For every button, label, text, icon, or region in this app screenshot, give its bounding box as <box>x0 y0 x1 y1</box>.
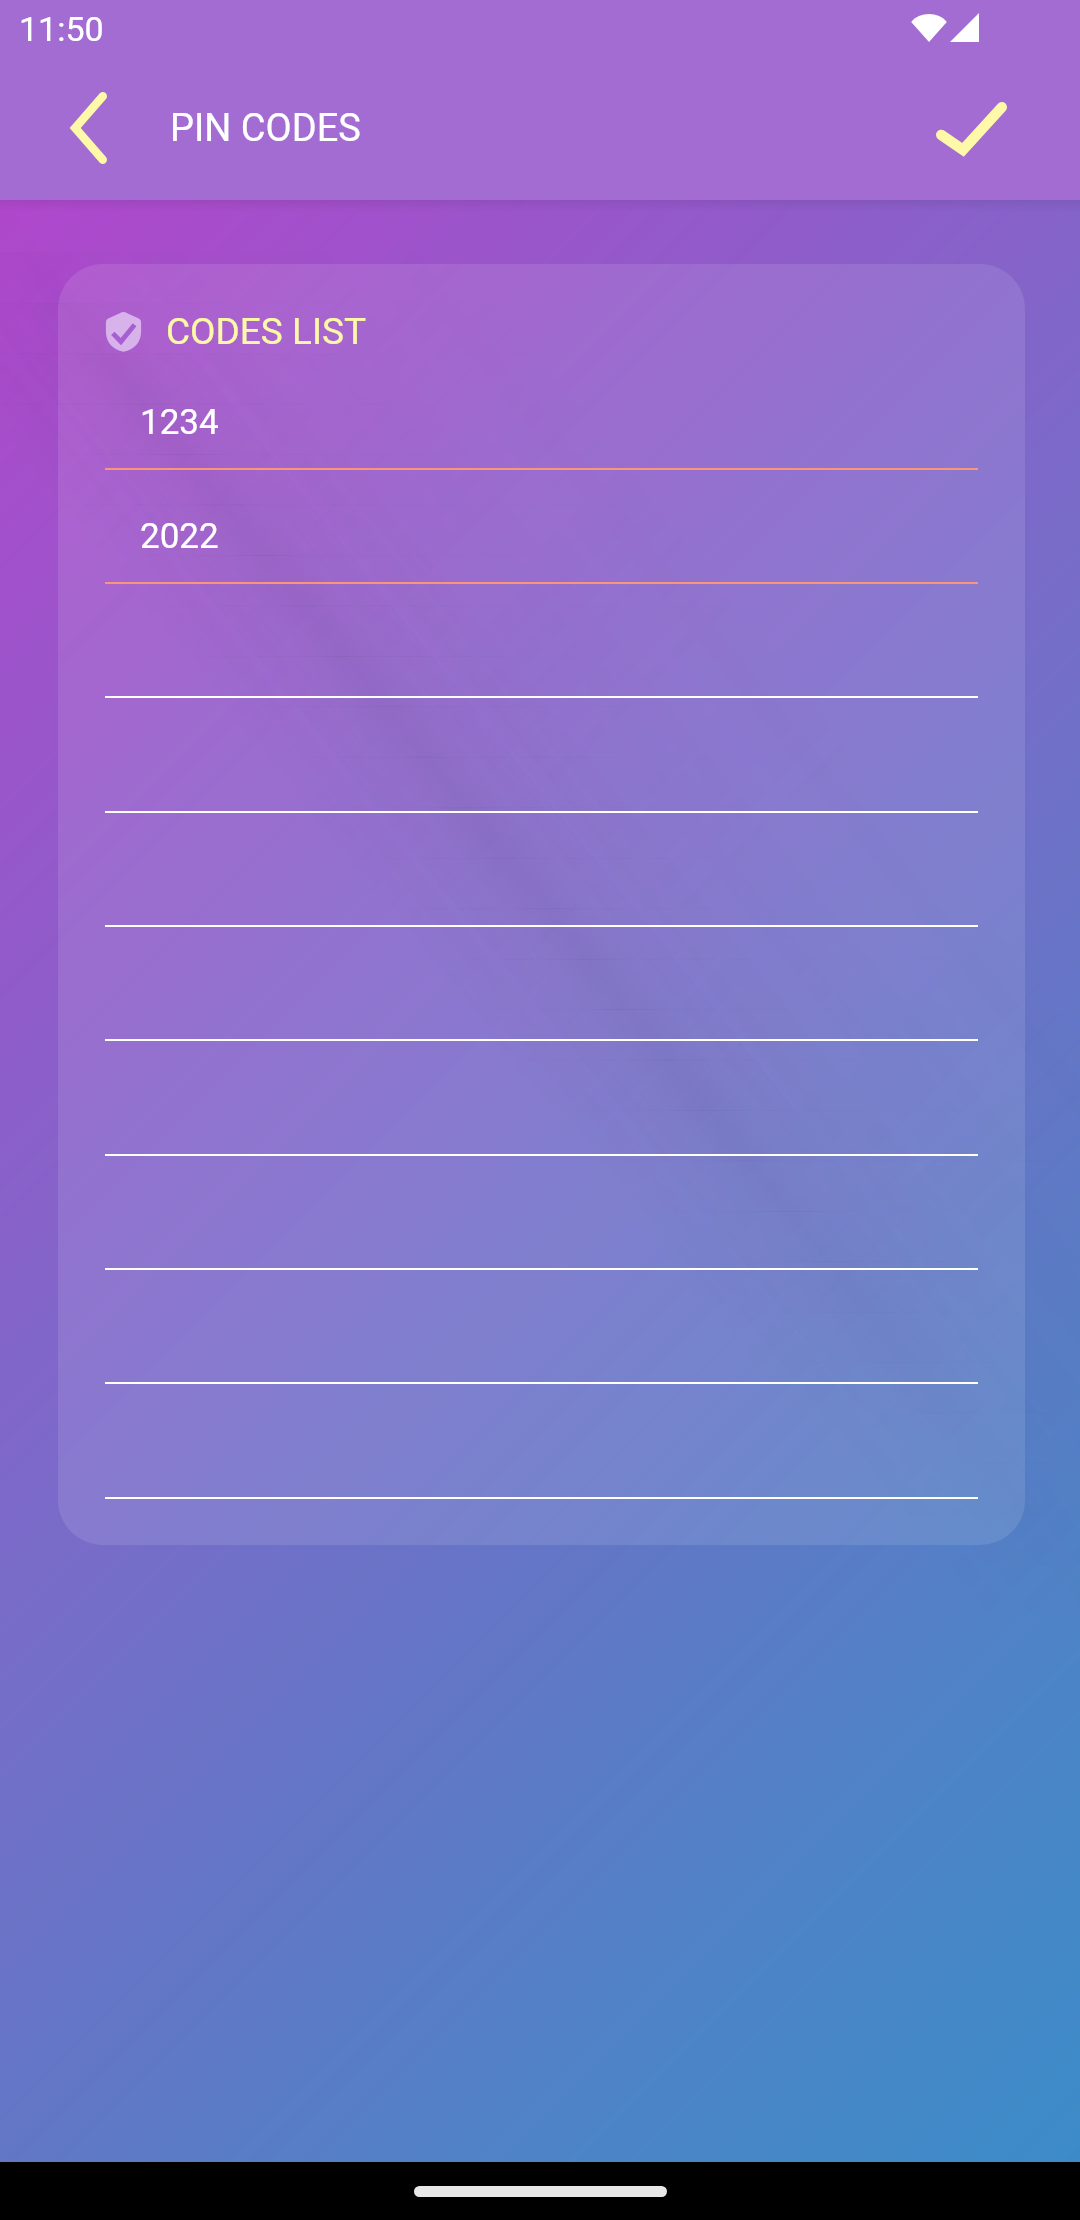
button[interactable]: 2022 <box>105 487 978 585</box>
staticText: 11:50 <box>19 9 104 49</box>
button[interactable] <box>105 1402 978 1500</box>
button[interactable] <box>105 716 978 814</box>
button[interactable]: Back <box>39 78 139 178</box>
button[interactable]: 1234 <box>105 373 978 471</box>
staticText: PIN CODES <box>170 106 361 151</box>
button[interactable] <box>105 944 978 1042</box>
staticText: 2022 <box>140 516 219 557</box>
button[interactable] <box>105 830 978 928</box>
button[interactable]: Confirm <box>921 78 1021 178</box>
staticText: CODES LIST <box>166 310 367 353</box>
button[interactable] <box>105 601 978 699</box>
button[interactable] <box>105 1173 978 1271</box>
button[interactable] <box>105 1059 978 1157</box>
staticText: 1234 <box>140 402 219 443</box>
button[interactable] <box>105 1287 978 1385</box>
